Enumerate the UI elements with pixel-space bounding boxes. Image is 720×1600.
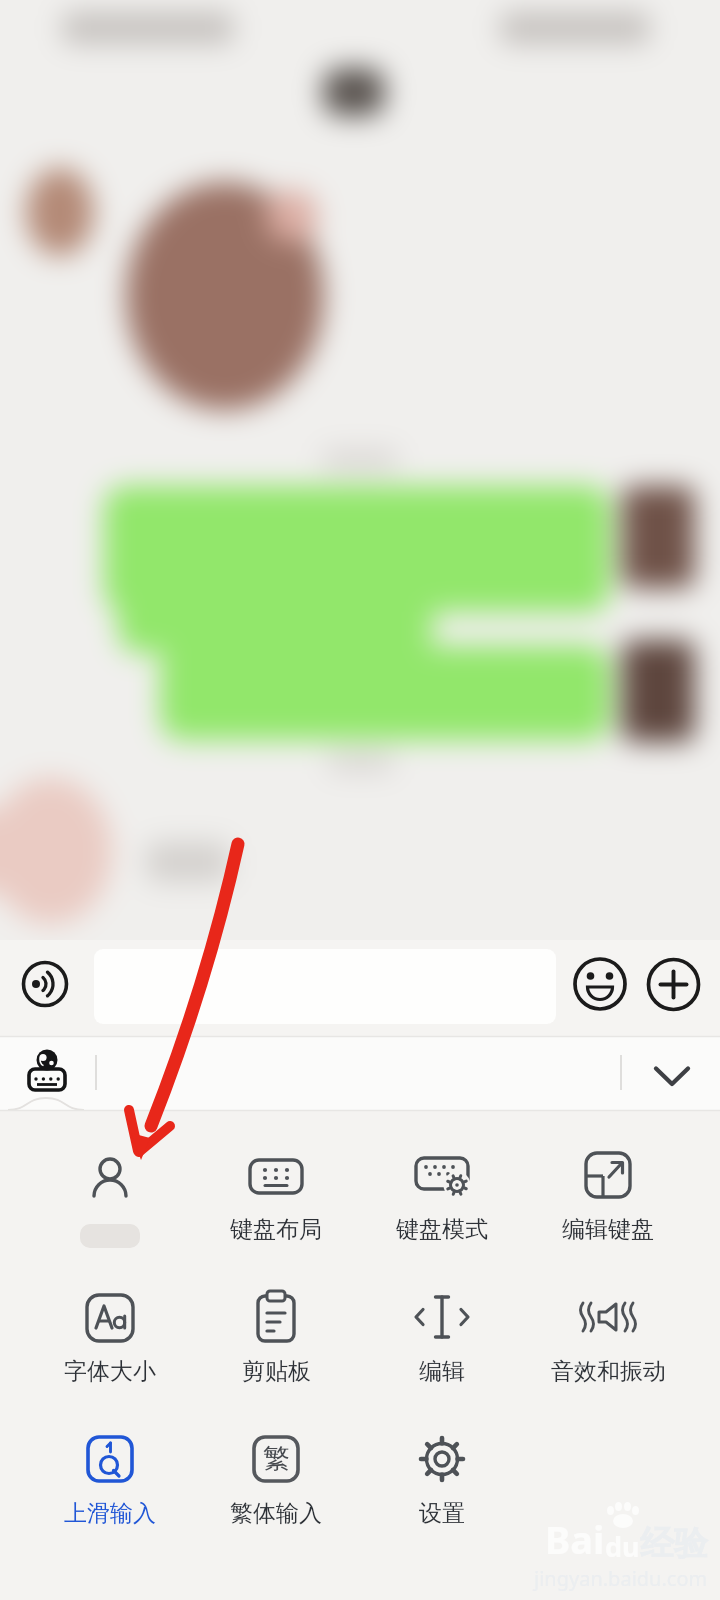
staticText: 剪贴板 [242, 1357, 311, 1386]
staticText: 编辑键盘 [562, 1215, 654, 1244]
staticText: 设置 [419, 1499, 465, 1528]
staticText: du [605, 1528, 640, 1565]
button[interactable] [94, 949, 556, 1024]
staticText: jingyan.baidu.com [534, 1565, 708, 1592]
staticText: 字体大小 [64, 1357, 156, 1386]
button[interactable] [21, 960, 69, 1008]
button[interactable]: 音效和振动 [528, 1281, 688, 1393]
staticText: 上滑输入 [64, 1499, 156, 1528]
button[interactable] [28, 1050, 66, 1088]
button[interactable]: 繁 [196, 1423, 356, 1535]
button[interactable] [574, 958, 626, 1010]
button[interactable]: 上滑输入 [30, 1423, 190, 1535]
staticText: 繁 [263, 1442, 290, 1476]
button[interactable]: 字体大小 [30, 1281, 190, 1393]
staticText: 键盘布局 [230, 1215, 322, 1244]
staticText: 键盘模式 [396, 1215, 488, 1244]
staticText: 繁体输入 [230, 1499, 322, 1528]
button[interactable]: 键盘布局 [196, 1139, 356, 1251]
button[interactable] [30, 1139, 190, 1251]
staticText: 编辑 [419, 1357, 465, 1386]
button[interactable]: 编辑 [362, 1281, 522, 1393]
button[interactable]: 编辑键盘 [528, 1139, 688, 1251]
button[interactable] [648, 959, 699, 1010]
button[interactable]: 剪贴板 [196, 1281, 356, 1393]
staticText: 经验 [640, 1522, 708, 1565]
staticText: Bai [545, 1513, 605, 1565]
staticText: 音效和振动 [551, 1357, 666, 1386]
button[interactable]: 键盘模式 [362, 1139, 522, 1251]
button[interactable] [646, 1058, 698, 1094]
button[interactable]: 设置 [362, 1423, 522, 1535]
